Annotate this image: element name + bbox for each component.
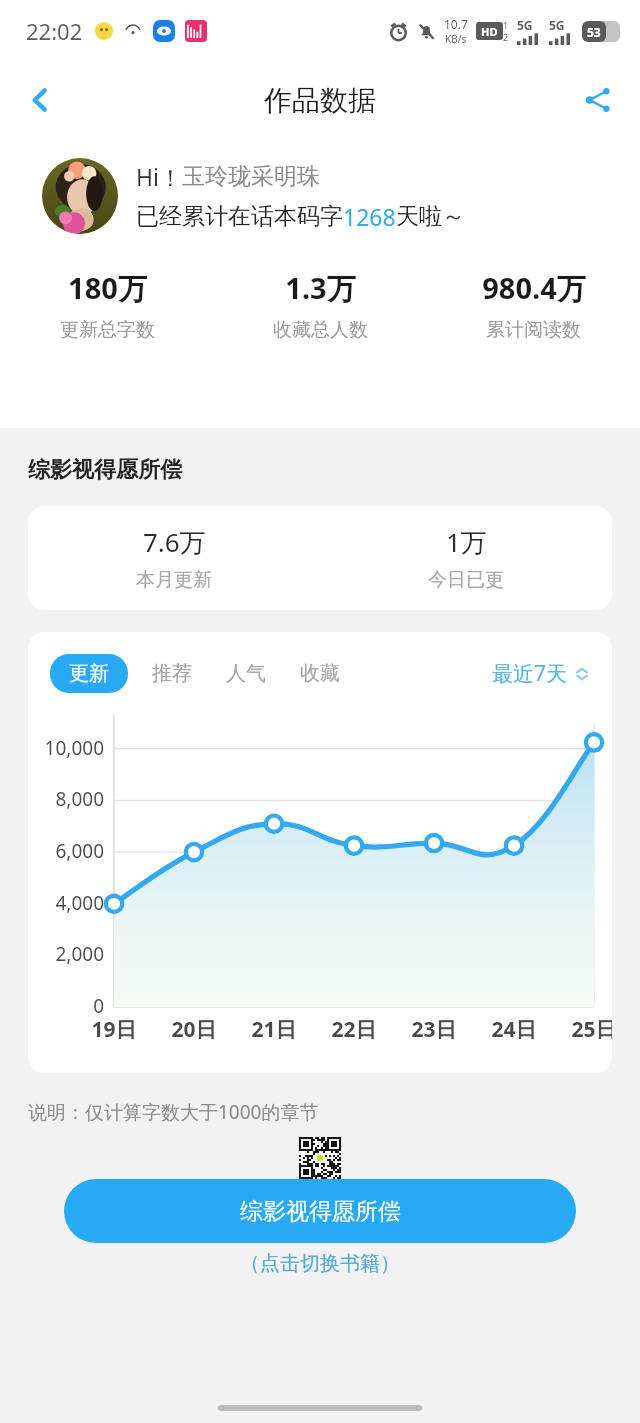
staticText: 玉玲珑采明珠 <box>182 162 320 191</box>
staticText: 53 <box>587 24 601 40</box>
staticText: 说明：仅计算字数大于1000的章节 <box>28 1099 319 1125</box>
staticText: HD <box>481 24 498 39</box>
staticText: 10,000 <box>28 735 104 761</box>
staticText: 最近7天 <box>492 659 568 688</box>
staticText: 综影视得愿所偿 <box>240 1197 401 1226</box>
staticText: Hi！ <box>136 161 182 192</box>
staticText: 24日 <box>481 1015 547 1044</box>
staticText: 8,000 <box>28 786 104 812</box>
button[interactable]: 返回 <box>12 72 68 128</box>
staticText: 23日 <box>401 1015 467 1044</box>
button[interactable]: 最近7天 <box>492 659 590 688</box>
staticText: 25日 <box>561 1015 612 1044</box>
button[interactable]: 980.4万 <box>427 268 640 342</box>
staticText: 已经累计在话本码字 <box>136 202 343 231</box>
staticText: 7.6万 <box>143 524 206 560</box>
staticText: 人气 <box>226 661 266 686</box>
button[interactable]: Hi！ <box>42 158 612 234</box>
staticText: 1 <box>503 19 509 31</box>
staticText: 0 <box>28 993 104 1019</box>
button[interactable]: 1.3万 <box>214 268 427 342</box>
staticText: 推荐 <box>152 661 192 686</box>
staticText: 20日 <box>161 1015 227 1044</box>
staticText: 5G <box>517 17 533 33</box>
button[interactable]: 分享 <box>570 72 626 128</box>
staticText: 4,000 <box>28 890 104 916</box>
staticText: 今日已更 <box>428 568 504 592</box>
staticText: 收藏总人数 <box>273 318 368 342</box>
staticText: 19日 <box>81 1015 147 1044</box>
staticText: 1.3万 <box>285 268 356 308</box>
staticText: 1268 <box>343 201 396 232</box>
button[interactable]: （点击切换书籍） <box>240 1251 400 1276</box>
staticText: 980.4万 <box>482 268 586 308</box>
staticText: 10.7 <box>444 16 468 32</box>
staticText: 22日 <box>321 1015 387 1044</box>
staticText: 天啦～ <box>396 202 465 231</box>
staticText: 更新 <box>69 661 109 686</box>
staticText: 2 <box>503 31 509 43</box>
staticText: 22:02 <box>26 16 83 46</box>
staticText: 本月更新 <box>136 568 212 592</box>
button[interactable]: 人气 <box>226 654 266 693</box>
button[interactable]: 180万 <box>0 268 214 342</box>
staticText: 累计阅读数 <box>486 318 581 342</box>
staticText: 更新总字数 <box>60 318 155 342</box>
staticText: 2,000 <box>28 941 104 967</box>
button[interactable]: 更新 <box>50 654 128 693</box>
staticText: 收藏 <box>300 661 340 686</box>
staticText: 1万 <box>446 524 487 560</box>
staticText: 综影视得愿所偿 <box>28 456 182 484</box>
staticText: 180万 <box>68 268 147 308</box>
staticText: 21日 <box>241 1015 307 1044</box>
staticText: KB/s <box>445 32 467 46</box>
staticText: 作品数据 <box>264 83 376 118</box>
staticText: 6,000 <box>28 838 104 864</box>
button[interactable]: 收藏 <box>300 654 340 693</box>
button[interactable]: 推荐 <box>152 654 192 693</box>
button[interactable]: 7.6万 <box>28 506 612 610</box>
staticText: 5G <box>549 17 565 33</box>
button[interactable]: 综影视得愿所偿 <box>64 1179 576 1243</box>
